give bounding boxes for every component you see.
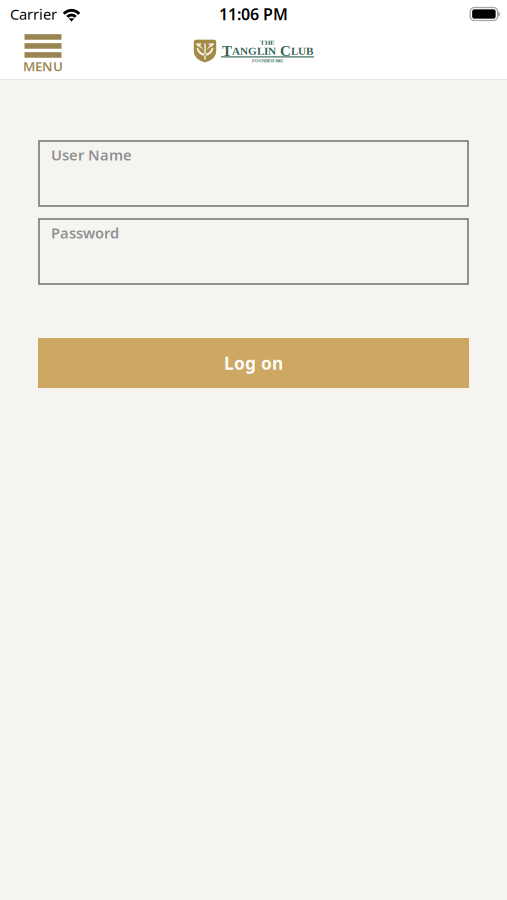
staticText: THE xyxy=(260,38,275,46)
staticText: LUB xyxy=(291,45,313,57)
staticText: 11:06 PM xyxy=(219,3,288,25)
staticText: Password xyxy=(51,223,119,242)
button[interactable]: Menu xyxy=(21,32,65,75)
staticText: C xyxy=(276,43,291,59)
staticText: Carrier xyxy=(10,4,57,24)
staticText: Log on xyxy=(224,351,283,374)
staticText: FOUNDED 1865 xyxy=(252,58,283,63)
staticText: ANGLIN xyxy=(232,45,276,57)
staticText: MENU xyxy=(23,57,63,75)
button[interactable]: Log on xyxy=(38,338,469,388)
staticText: User Name xyxy=(51,145,132,164)
staticText: T xyxy=(222,43,232,59)
